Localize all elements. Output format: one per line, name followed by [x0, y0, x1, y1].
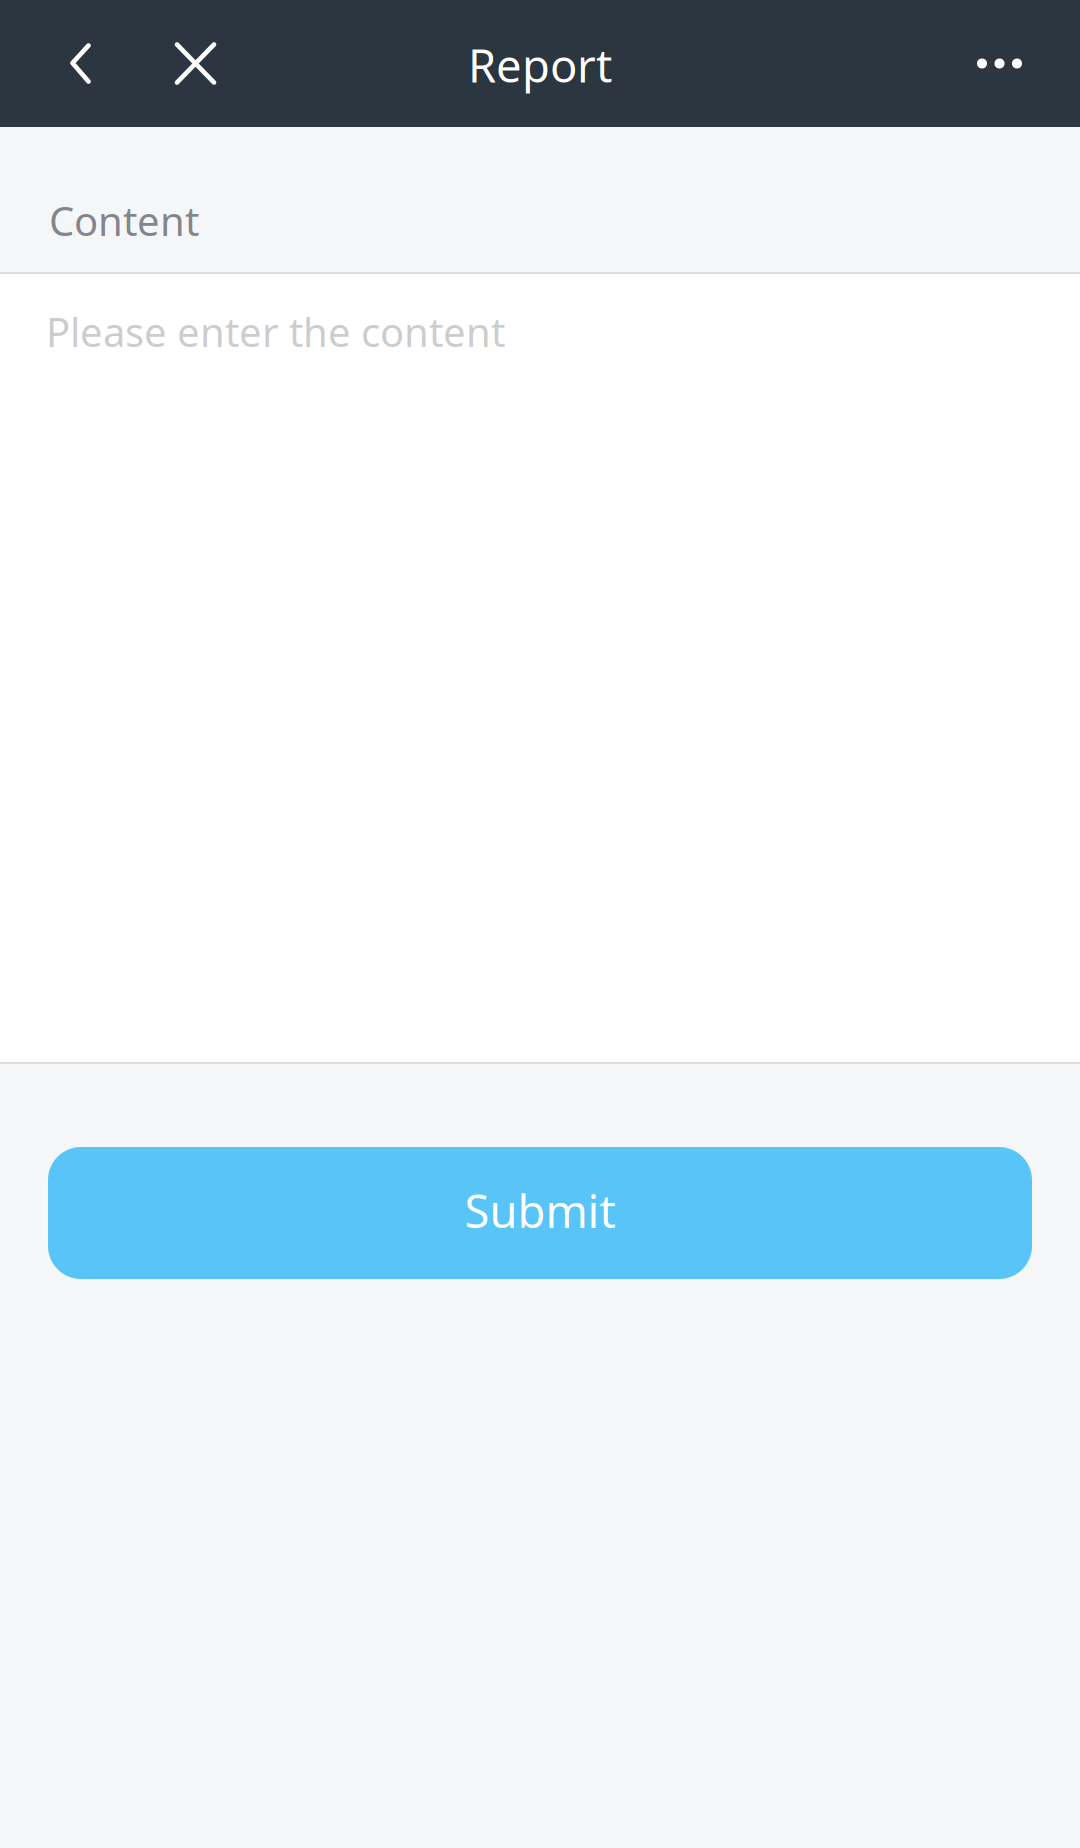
staticText: Submit: [464, 1180, 615, 1241]
button[interactable]: Please enter the content: [0, 274, 1080, 1062]
staticText: Content: [49, 194, 199, 247]
staticText: Report: [468, 35, 612, 95]
button[interactable]: Submit: [48, 1147, 1032, 1279]
button[interactable]: Close: [137, 0, 254, 127]
button[interactable]: More options: [942, 0, 1057, 127]
button[interactable]: Back: [24, 0, 137, 127]
staticText: Please enter the content: [46, 305, 505, 358]
